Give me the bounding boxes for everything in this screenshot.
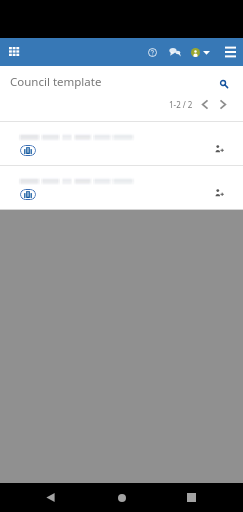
- button[interactable]: Add member: [0, 122, 243, 165]
- button[interactable]: Next page: [216, 98, 230, 111]
- button[interactable]: Apps: [4, 42, 24, 62]
- button[interactable]: Back: [0, 483, 81, 512]
- staticText: 1-2 / 2: [169, 99, 193, 110]
- button[interactable]: Previous page: [198, 98, 212, 111]
- button[interactable]: Account: [189, 45, 212, 60]
- button[interactable]: Menu: [221, 43, 239, 61]
- staticText: Council template: [10, 74, 102, 90]
- button[interactable]: Chat: [166, 43, 184, 61]
- button[interactable]: Add member: [0, 166, 243, 209]
- button[interactable]: Recents: [162, 483, 243, 512]
- button[interactable]: Home: [81, 483, 162, 512]
- button[interactable]: Add member: [215, 144, 224, 153]
- button[interactable]: Help: [143, 43, 161, 61]
- button[interactable]: Search: [216, 76, 232, 92]
- button[interactable]: Add member: [215, 188, 224, 197]
